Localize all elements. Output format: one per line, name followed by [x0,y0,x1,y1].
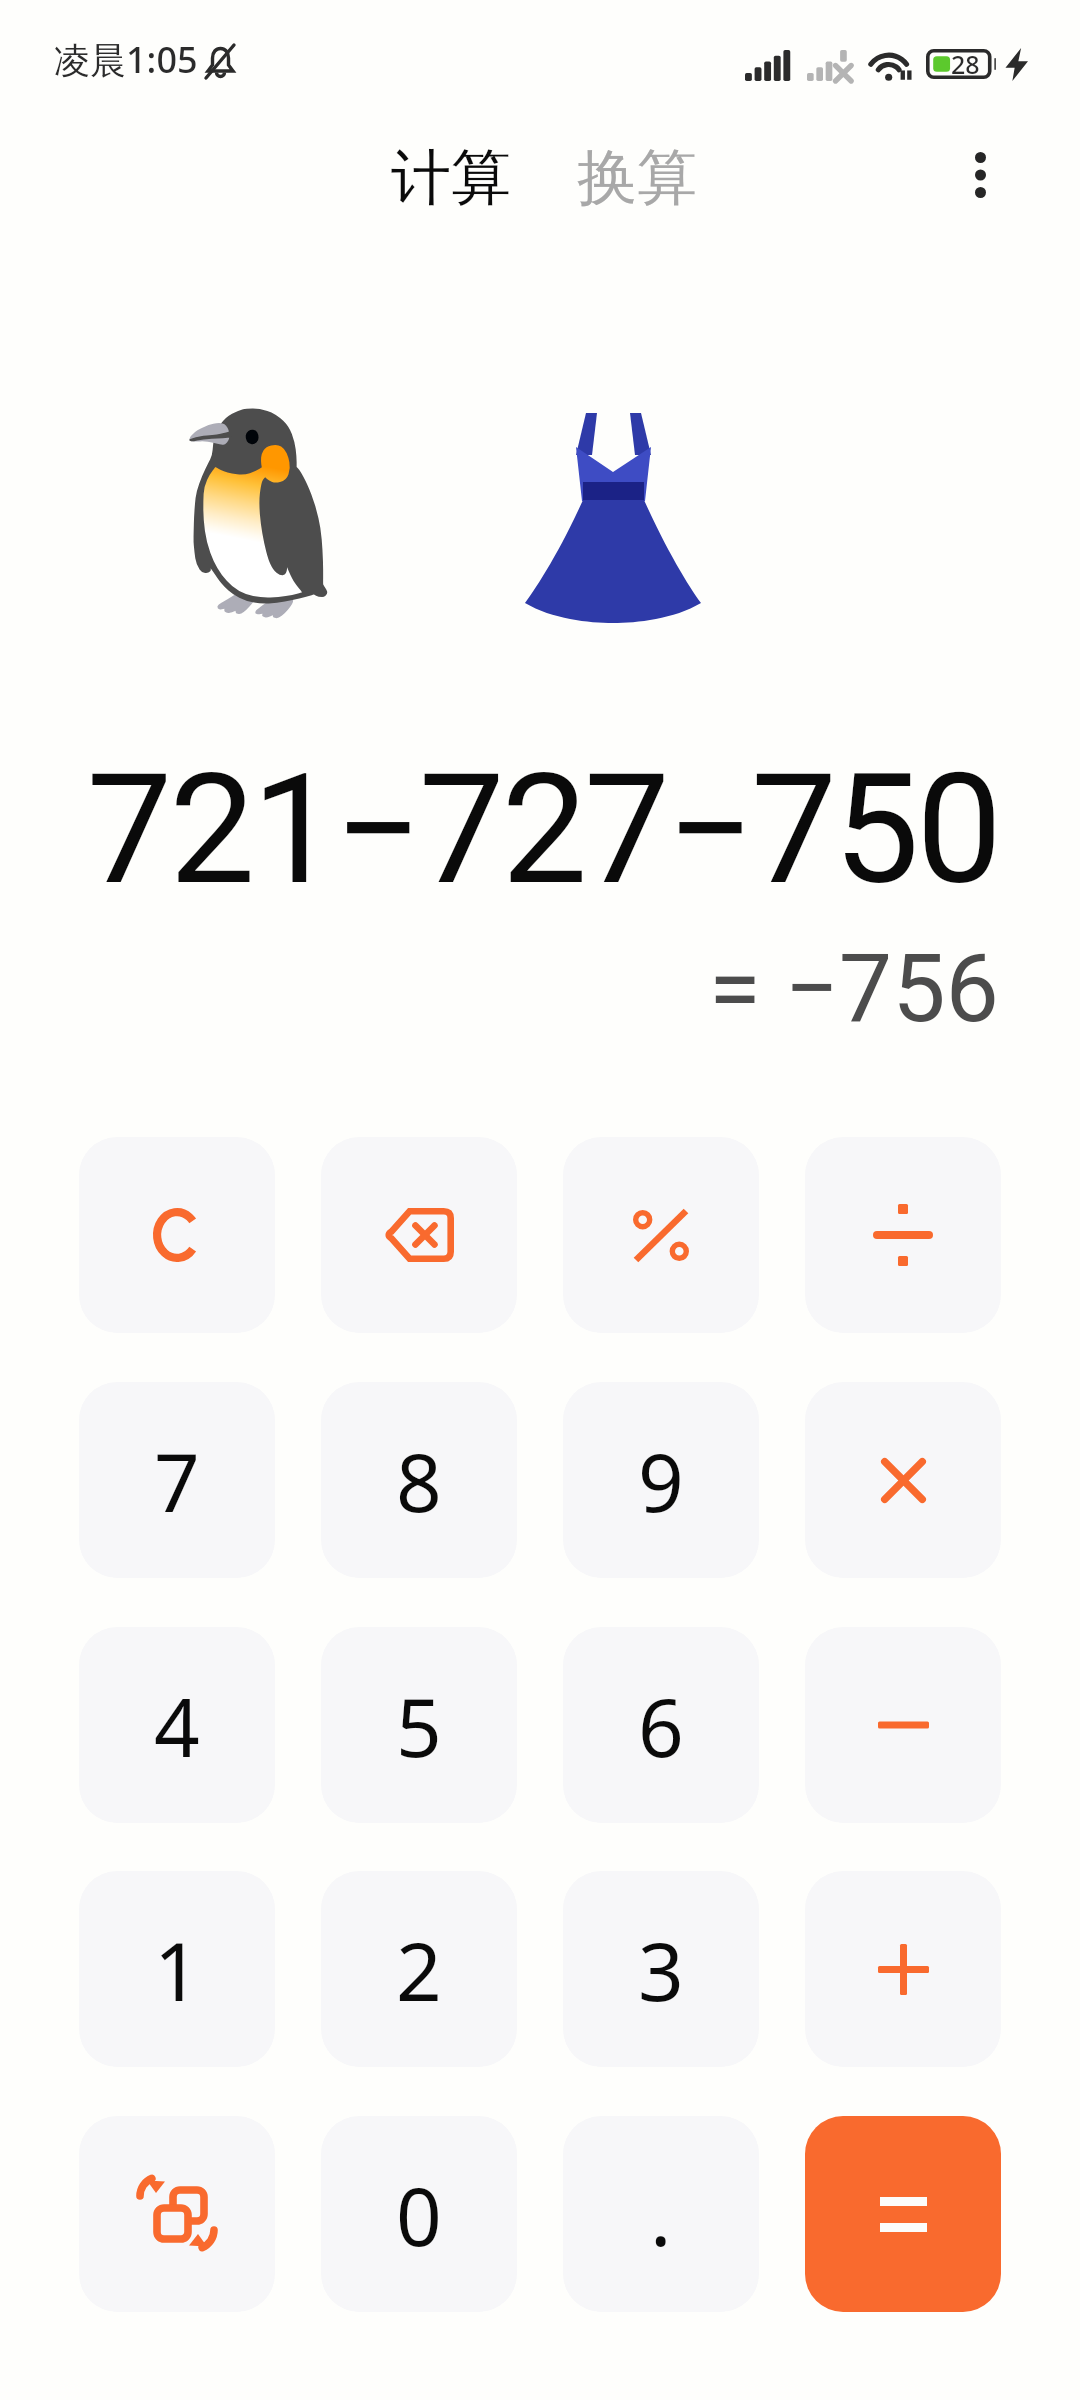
staticText: 3 [638,1915,684,2024]
staticText: = −756 [708,933,999,1044]
staticText: 凌晨1:05 [54,35,198,84]
button[interactable]: 3 [563,1871,759,2067]
button[interactable]: More options [932,127,1028,223]
staticText: . [650,2160,672,2269]
button[interactable]: . [563,2116,759,2312]
staticText: 7 [154,1426,200,1535]
button[interactable]: 0 [321,2116,517,2312]
staticText: 28 [951,47,980,81]
button[interactable]: 8 [321,1382,517,1578]
button[interactable]: Clear [79,1137,275,1333]
staticText: 换算 [577,140,697,216]
button[interactable]: 换算 [567,128,707,228]
button[interactable]: Divide [805,1137,1001,1333]
staticText: 8 [396,1426,442,1535]
staticText: 6 [638,1671,684,1780]
button[interactable]: 721−727−750 [0,690,1080,1090]
button[interactable]: 2 [321,1871,517,2067]
button[interactable]: Unit converter [79,2116,275,2312]
button[interactable]: 9 [563,1382,759,1578]
staticText: 2 [396,1915,442,2024]
button[interactable]: 6 [563,1627,759,1823]
button[interactable]: Percent [563,1137,759,1333]
button[interactable]: 计算 [381,128,521,228]
staticText: 计算 [391,140,511,216]
button[interactable]: 7 [79,1382,275,1578]
button[interactable]: 5 [321,1627,517,1823]
staticText: 0 [396,2160,442,2269]
button[interactable]: Equals [805,2116,1001,2312]
button[interactable]: Minus [805,1627,1001,1823]
staticText: 4 [154,1671,200,1780]
staticText: 1 [154,1915,200,2024]
button[interactable]: 1 [79,1871,275,2067]
button[interactable]: Plus [805,1871,1001,2067]
staticText: 🐧 [137,398,382,628]
button[interactable]: Multiply [805,1382,1001,1578]
button[interactable]: Backspace [321,1137,517,1333]
staticText: 5 [396,1671,442,1780]
other: Silent mode [202,42,238,82]
staticText: 9 [638,1426,684,1535]
staticText: 721−727−750 [86,740,999,919]
button[interactable]: 4 [79,1627,275,1823]
